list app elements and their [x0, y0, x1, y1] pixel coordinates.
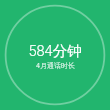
staticText: 584分钟	[28, 42, 82, 60]
button[interactable]: Monthly call duration, 584 minutes	[0, 0, 110, 110]
staticText: 4月通话时长	[36, 61, 75, 70]
